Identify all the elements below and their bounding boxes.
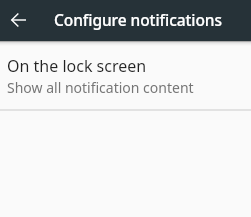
- button[interactable]: On the lock screen: [0, 41, 251, 110]
- staticText: Configure notifications: [54, 9, 222, 30]
- button[interactable]: Navigate up: [4, 6, 32, 34]
- staticText: On the lock screen: [7, 55, 147, 77]
- staticText: Show all notification content: [7, 78, 194, 97]
